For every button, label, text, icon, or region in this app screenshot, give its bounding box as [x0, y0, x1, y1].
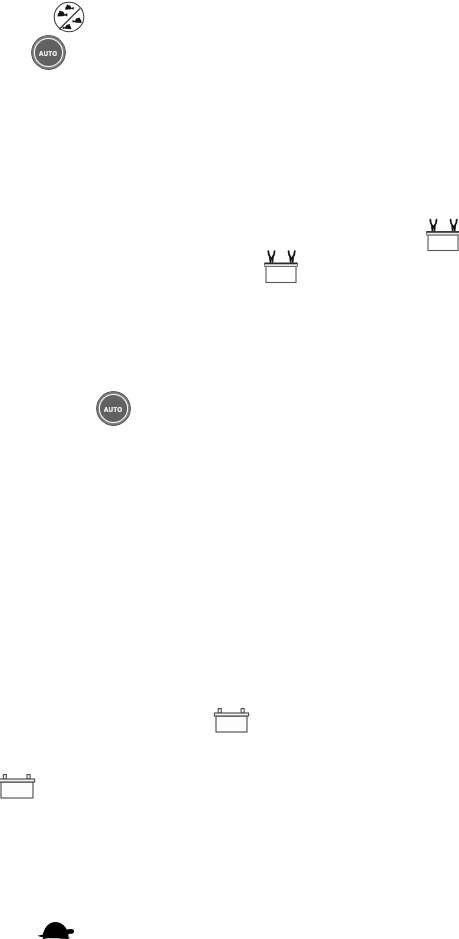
button[interactable]: Auto	[96, 391, 131, 426]
button[interactable]: Auto	[31, 35, 66, 70]
button[interactable]: Battery with fork terminals	[264, 248, 300, 284]
staticText: AUTO	[104, 405, 123, 413]
button[interactable]: Battery	[212, 706, 252, 736]
button[interactable]: Tortoise	[34, 918, 78, 939]
button[interactable]: Battery	[0, 772, 38, 802]
staticText: AUTO	[39, 49, 58, 57]
button[interactable]: Battery with fork terminals	[426, 216, 459, 252]
button[interactable]: No fish	[53, 1, 85, 33]
